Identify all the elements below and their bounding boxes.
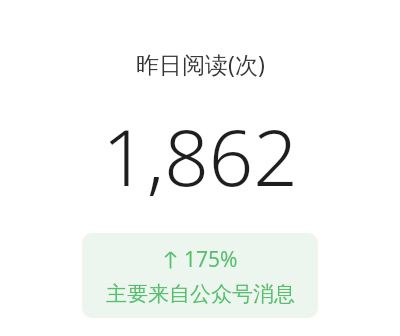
staticText: 175% [184,245,238,274]
staticText: 昨日阅读(次) [136,48,265,79]
button[interactable]: Increase [82,233,318,318]
staticText: 1,862 [102,103,298,209]
other: Increase [163,250,178,270]
staticText: 主要来自公众号消息 [106,281,295,307]
